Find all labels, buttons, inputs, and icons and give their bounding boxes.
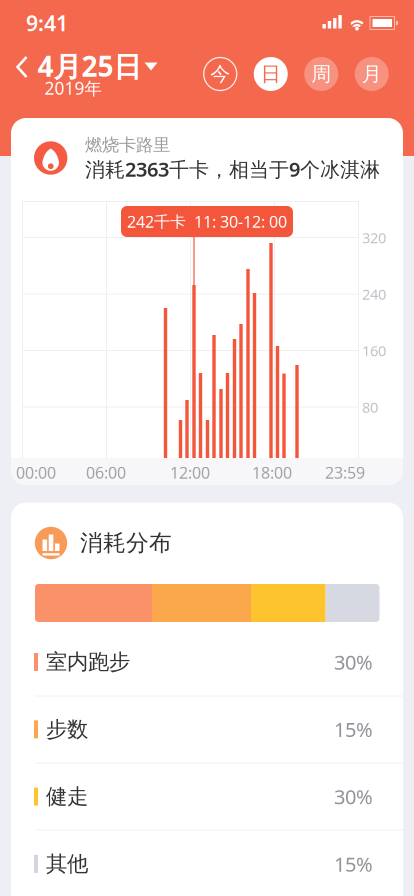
staticText: 242千卡 11: 30-12: 00	[127, 211, 287, 232]
staticText: 15%	[334, 851, 373, 877]
button[interactable]: 日	[254, 57, 288, 91]
staticText: 消耗分布	[80, 529, 172, 557]
staticText: 其他	[46, 851, 88, 877]
staticText: 月	[362, 62, 382, 86]
button[interactable]: 4月25日	[37, 46, 167, 86]
staticText: 80	[362, 397, 378, 417]
staticText: 步数	[46, 716, 88, 742]
button[interactable]: 月	[355, 57, 389, 91]
button[interactable]: 今	[203, 57, 237, 91]
staticText: 320	[362, 228, 386, 247]
staticText: 室内跑步	[46, 649, 130, 675]
staticText: 160	[362, 341, 386, 360]
staticText: 15%	[334, 716, 373, 743]
staticText: 燃烧卡路里	[85, 134, 170, 156]
staticText: 消耗2363千卡，相当于9个冰淇淋	[85, 156, 380, 182]
staticText: 周	[311, 62, 331, 86]
staticText: 今	[210, 62, 230, 86]
staticText: 23:59	[325, 462, 365, 483]
staticText: 2019年	[44, 76, 101, 99]
staticText: 240	[362, 284, 386, 304]
staticText: 健走	[46, 783, 88, 810]
staticText: 日	[261, 62, 281, 86]
staticText: 4月25日	[37, 47, 141, 85]
staticText: 06:00	[86, 462, 126, 483]
button[interactable]: 周	[304, 57, 338, 91]
staticText: 9:41	[26, 9, 68, 37]
staticText: 30%	[334, 649, 373, 675]
staticText: 00:00	[16, 462, 56, 483]
staticText: 30%	[334, 783, 373, 810]
staticText: 18:00	[252, 462, 292, 483]
button[interactable]	[7, 45, 37, 89]
staticText: 12:00	[170, 462, 210, 483]
